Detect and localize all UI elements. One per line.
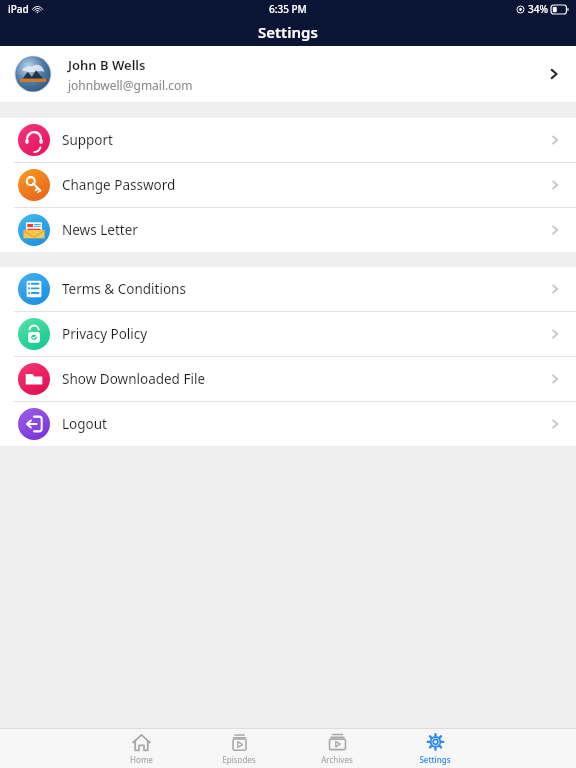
staticText: Support [62,131,113,149]
staticText: John B Wells [68,56,146,74]
staticText: iPad [8,2,29,16]
staticText: News Letter [62,221,138,239]
button[interactable]: Home [111,729,171,768]
staticText: 34% [528,2,548,16]
button[interactable]: Logout [0,402,576,446]
button[interactable]: Privacy Policy [0,312,576,356]
button[interactable]: John B Wells [0,46,576,102]
staticText: Show Downloaded File [62,370,206,388]
staticText: Archives [321,754,353,765]
button[interactable]: Settings [405,729,465,768]
staticText: johnbwell@gmail.com [68,77,193,93]
button[interactable]: Show Downloaded File [0,357,576,401]
staticText: 6:35 PM [269,2,307,16]
staticText: Home [130,754,153,765]
button[interactable]: Episodes [209,729,269,768]
button[interactable]: News Letter [0,208,576,252]
staticText: Privacy Policy [62,325,148,343]
button[interactable]: Terms & Conditions [0,267,576,311]
button[interactable]: Archives [307,729,367,768]
staticText: Settings [258,22,318,42]
button[interactable]: Change Password [0,163,576,207]
button[interactable]: Support [0,118,576,162]
staticText: Settings [419,754,451,765]
staticText: Terms & Conditions [62,280,186,298]
staticText: Logout [62,415,107,433]
staticText: Change Password [62,176,176,194]
staticText: Episodes [222,754,256,765]
